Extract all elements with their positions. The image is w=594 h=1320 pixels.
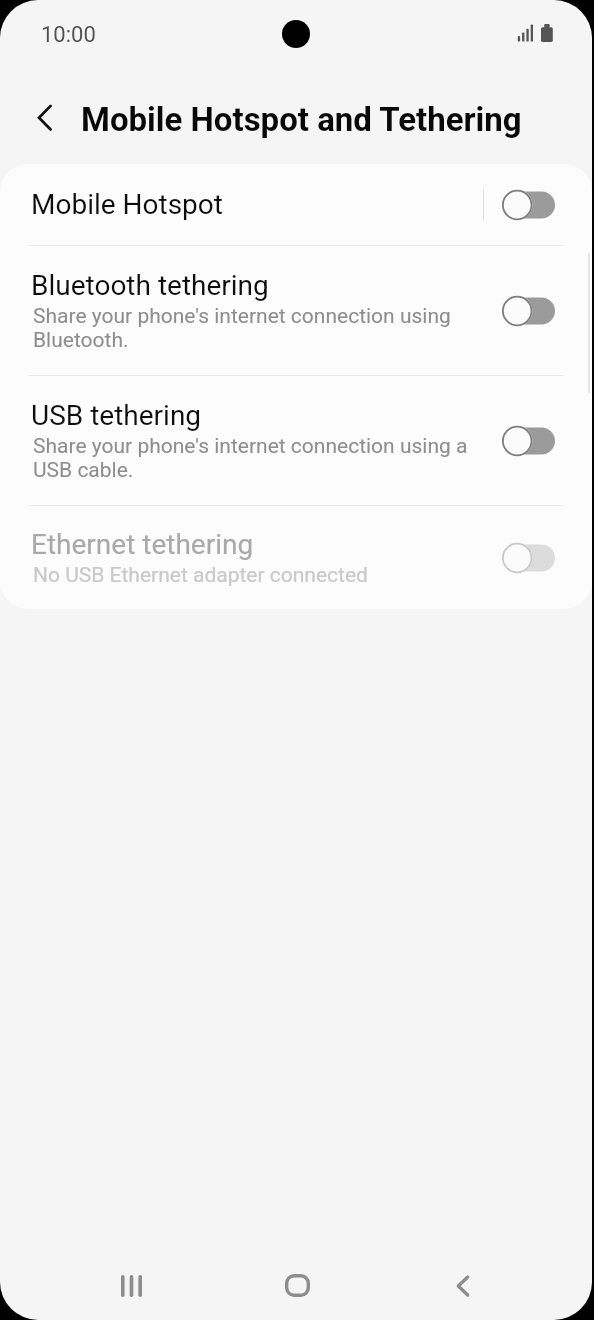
staticText: Share your phone's internet connection u… — [33, 304, 477, 352]
button[interactable]: Toggle — [502, 295, 556, 327]
button[interactable]: Ethernet tethering — [0, 506, 592, 609]
button[interactable]: Toggle — [502, 189, 556, 221]
button[interactable]: USB tethering — [0, 376, 592, 505]
button[interactable]: Mobile Hotspot — [0, 164, 592, 245]
staticText: Ethernet tethering — [31, 530, 254, 560]
staticText: Mobile Hotspot and Tethering — [81, 99, 522, 139]
button[interactable]: Home — [242, 1251, 352, 1320]
staticText: USB tethering — [31, 401, 202, 431]
staticText: No USB Ethernet adapter connected — [33, 563, 368, 587]
button[interactable]: Toggle — [502, 425, 556, 457]
button[interactable]: Back — [408, 1251, 518, 1320]
staticText: Mobile Hotspot — [31, 190, 223, 220]
button[interactable]: Toggle — [502, 542, 556, 574]
button[interactable]: Navigate up — [19, 88, 71, 140]
button[interactable]: Bluetooth tethering — [0, 246, 592, 375]
staticText: 10:00 — [41, 22, 96, 48]
staticText: Bluetooth tethering — [31, 271, 269, 301]
staticText: Share your phone's internet connection u… — [33, 434, 477, 482]
button[interactable]: Recent apps — [76, 1251, 186, 1320]
